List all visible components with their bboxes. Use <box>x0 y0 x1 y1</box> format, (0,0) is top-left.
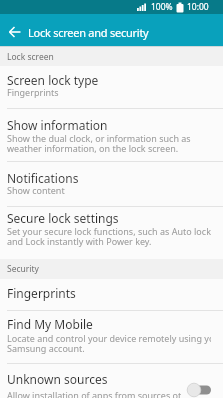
staticText: Lock screen and security <box>28 25 149 40</box>
staticText: Locate and control your device remotely … <box>7 332 211 354</box>
staticText: Notifications <box>7 170 79 186</box>
staticText: Unknown sources <box>7 371 108 387</box>
button[interactable]: Unknown sources <box>0 364 223 398</box>
button[interactable]: Screen lock type <box>0 66 223 108</box>
button[interactable]: Find My Mobile <box>0 311 223 363</box>
staticText: 100% <box>151 1 173 13</box>
button[interactable]: Show information <box>0 109 223 161</box>
staticText: 10:00 <box>187 1 209 13</box>
staticText: Fingerprints <box>7 285 76 301</box>
button[interactable]: Notifications <box>0 162 223 206</box>
staticText: Fingerprints <box>7 86 59 98</box>
staticText: Show content <box>7 184 65 196</box>
staticText: Show the dual clock, or information such… <box>7 132 191 154</box>
staticText: Find My Mobile <box>7 316 93 332</box>
staticText: Set your secure lock functions, such as … <box>7 225 211 247</box>
button[interactable]: Lock screen and security <box>0 18 223 46</box>
staticText: Lock screen <box>7 51 54 63</box>
staticText: Show information <box>7 117 108 133</box>
button[interactable]: Fingerprints <box>0 279 223 310</box>
staticText: Secure lock settings <box>7 210 119 226</box>
staticText: Security <box>7 263 39 275</box>
staticText: Allow installation of apps from sources … <box>7 389 181 398</box>
button[interactable]: Secure lock settings <box>0 207 223 259</box>
staticText: Screen lock type <box>7 72 99 88</box>
